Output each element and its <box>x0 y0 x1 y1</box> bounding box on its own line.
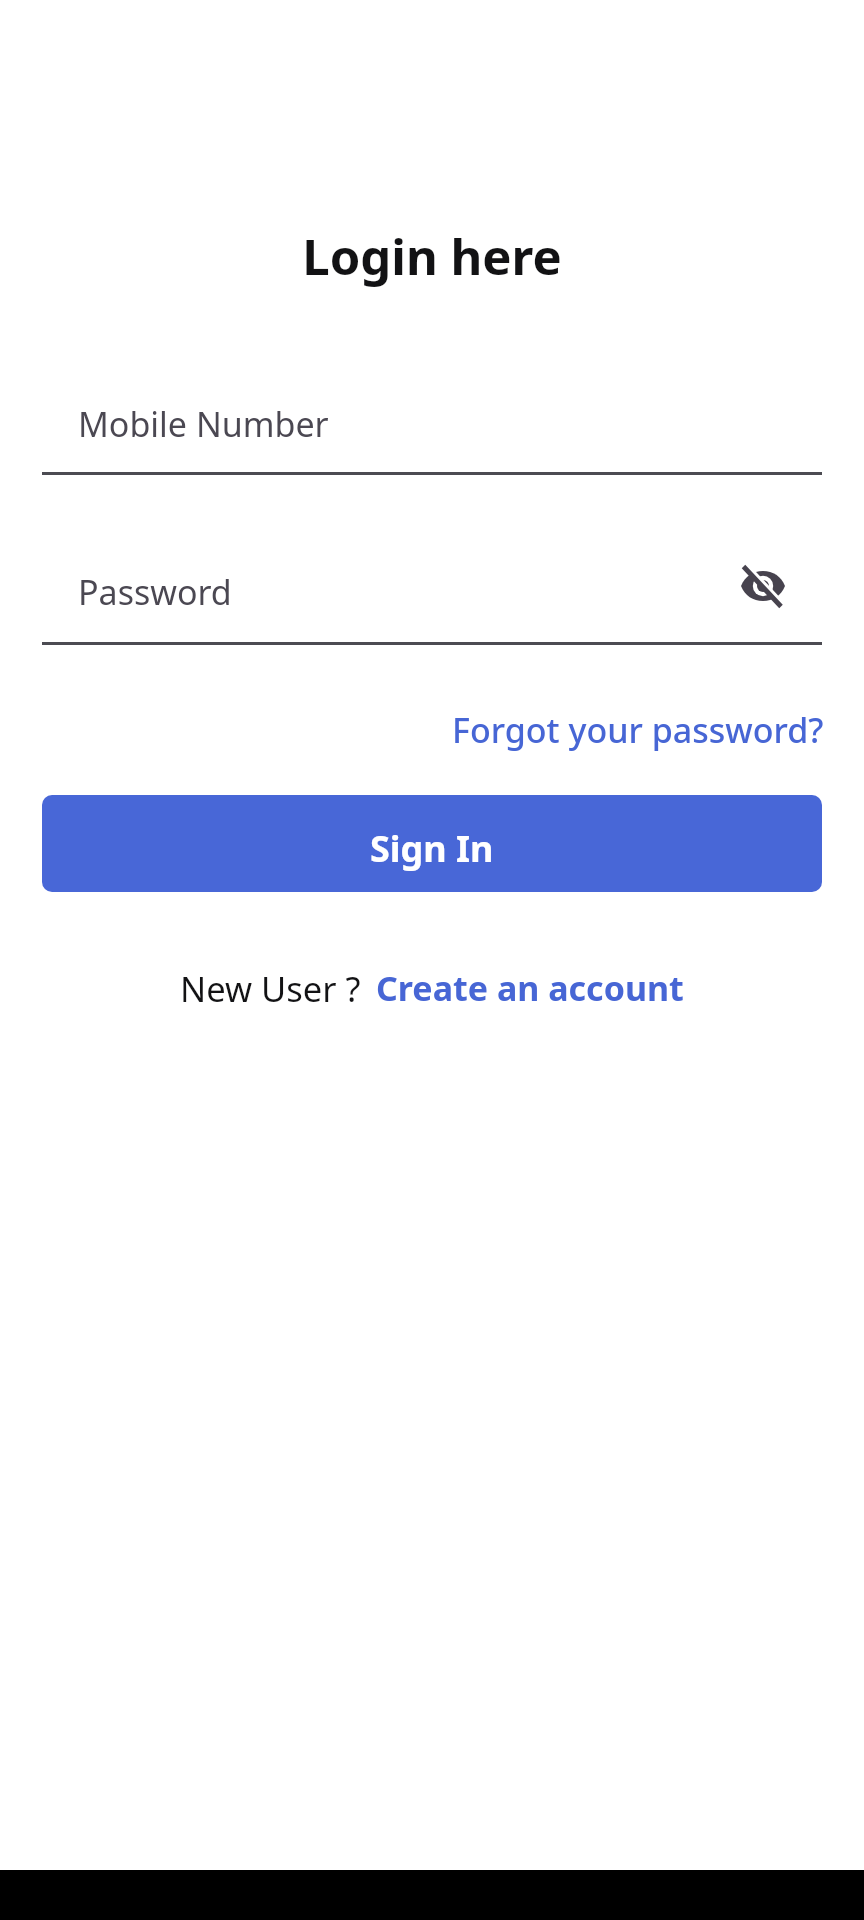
button[interactable]: Forgot your password? <box>452 707 824 753</box>
button[interactable]: Sign In <box>42 795 822 892</box>
staticText: Password <box>78 569 232 615</box>
button[interactable]: Password <box>42 554 822 645</box>
button[interactable] <box>739 562 787 610</box>
staticText: Sign In <box>370 824 494 873</box>
button[interactable]: Create an account <box>376 965 684 1011</box>
staticText: Forgot your password? <box>452 707 824 753</box>
staticText: New User ? <box>180 965 361 1012</box>
button[interactable]: Mobile Number <box>42 382 822 475</box>
staticText: Login here <box>0 223 864 290</box>
staticText: Mobile Number <box>78 401 329 447</box>
staticText: Create an account <box>376 965 684 1011</box>
